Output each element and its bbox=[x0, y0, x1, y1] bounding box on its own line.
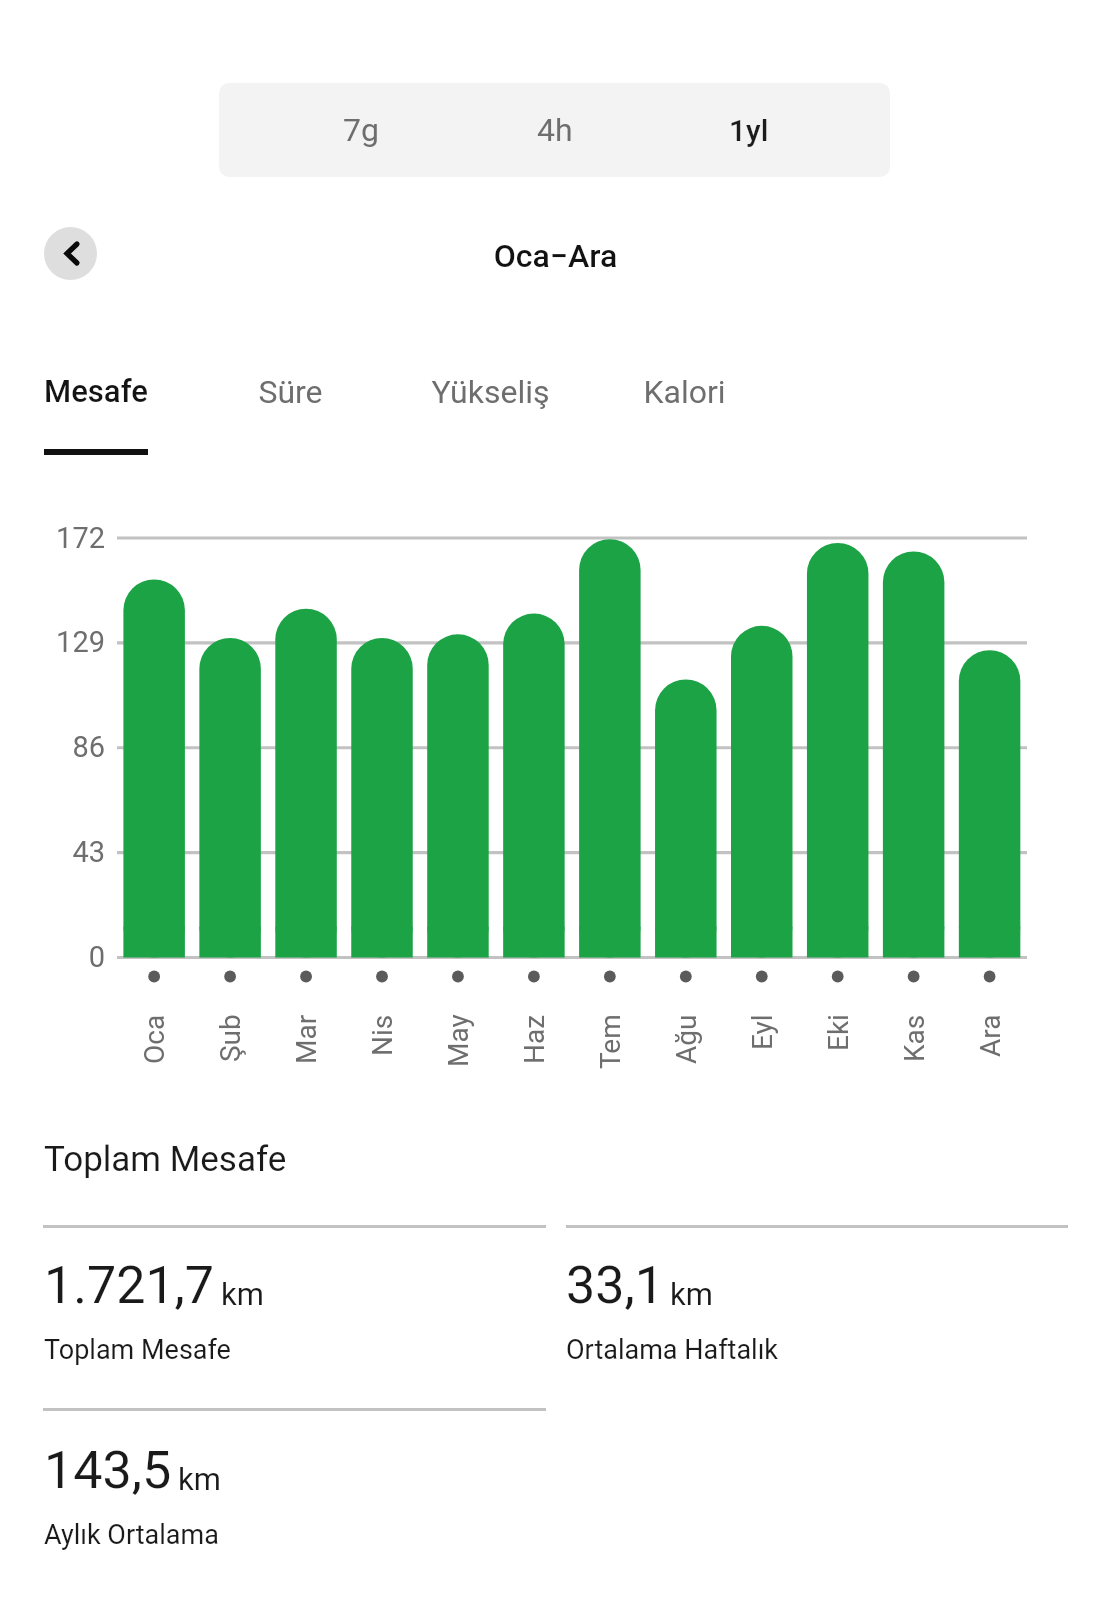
staticText: Toplam Mesafe bbox=[44, 1334, 231, 1366]
button[interactable]: Back bbox=[44, 227, 97, 280]
staticText: Süre bbox=[258, 373, 323, 411]
staticText: 43 bbox=[0, 835, 105, 869]
staticText: 143,5 bbox=[44, 1440, 172, 1501]
button[interactable]: Kalori bbox=[644, 373, 724, 451]
button[interactable]: Mesafe bbox=[44, 373, 148, 455]
staticText: Ağu bbox=[670, 1014, 703, 1064]
staticText: Eyl bbox=[746, 1014, 779, 1050]
staticText: 1.721,7 bbox=[44, 1255, 215, 1316]
staticText: Kalori bbox=[643, 373, 726, 411]
staticText: Eki bbox=[822, 1014, 855, 1051]
staticText: May bbox=[442, 1014, 475, 1067]
staticText: Ortalama Haftalık bbox=[566, 1334, 779, 1366]
staticText: 172 bbox=[0, 521, 105, 555]
button[interactable]: 1yl bbox=[652, 83, 846, 177]
staticText: Nis bbox=[366, 1014, 399, 1056]
button[interactable]: 4h bbox=[458, 83, 652, 177]
staticText: Toplam Mesafe bbox=[44, 1139, 287, 1180]
staticText: Oca bbox=[138, 1014, 171, 1064]
staticText: 7g bbox=[343, 111, 379, 149]
staticText: 0 bbox=[0, 940, 105, 974]
staticText: Aylık Ortalama bbox=[44, 1519, 219, 1551]
staticText: km bbox=[670, 1276, 713, 1312]
staticText: Ara bbox=[974, 1014, 1007, 1057]
button[interactable]: Yükseliş bbox=[432, 373, 548, 451]
staticText: Haz bbox=[518, 1014, 551, 1064]
staticText: 129 bbox=[0, 625, 105, 659]
staticText: 33,1 bbox=[566, 1255, 664, 1316]
staticText: km bbox=[178, 1461, 221, 1497]
staticText: Mar bbox=[290, 1014, 323, 1064]
staticText: km bbox=[221, 1276, 264, 1312]
staticText: Şub bbox=[214, 1014, 247, 1062]
staticText: Oca−Ara bbox=[0, 237, 1111, 275]
staticText: 1yl bbox=[729, 113, 769, 148]
button[interactable]: 33,1 bbox=[566, 1255, 779, 1366]
staticText: Tem bbox=[594, 1014, 627, 1069]
staticText: 4h bbox=[537, 111, 573, 149]
button[interactable]: 1.721,7 bbox=[44, 1255, 264, 1366]
staticText: 86 bbox=[0, 730, 105, 764]
staticText: Kas bbox=[898, 1014, 931, 1062]
button[interactable]: Süre bbox=[258, 373, 322, 451]
button[interactable]: 7g bbox=[263, 83, 458, 177]
staticText: Mesafe bbox=[44, 373, 148, 409]
button[interactable]: 143,5 bbox=[44, 1440, 221, 1551]
staticText: Yükseliş bbox=[431, 373, 550, 411]
